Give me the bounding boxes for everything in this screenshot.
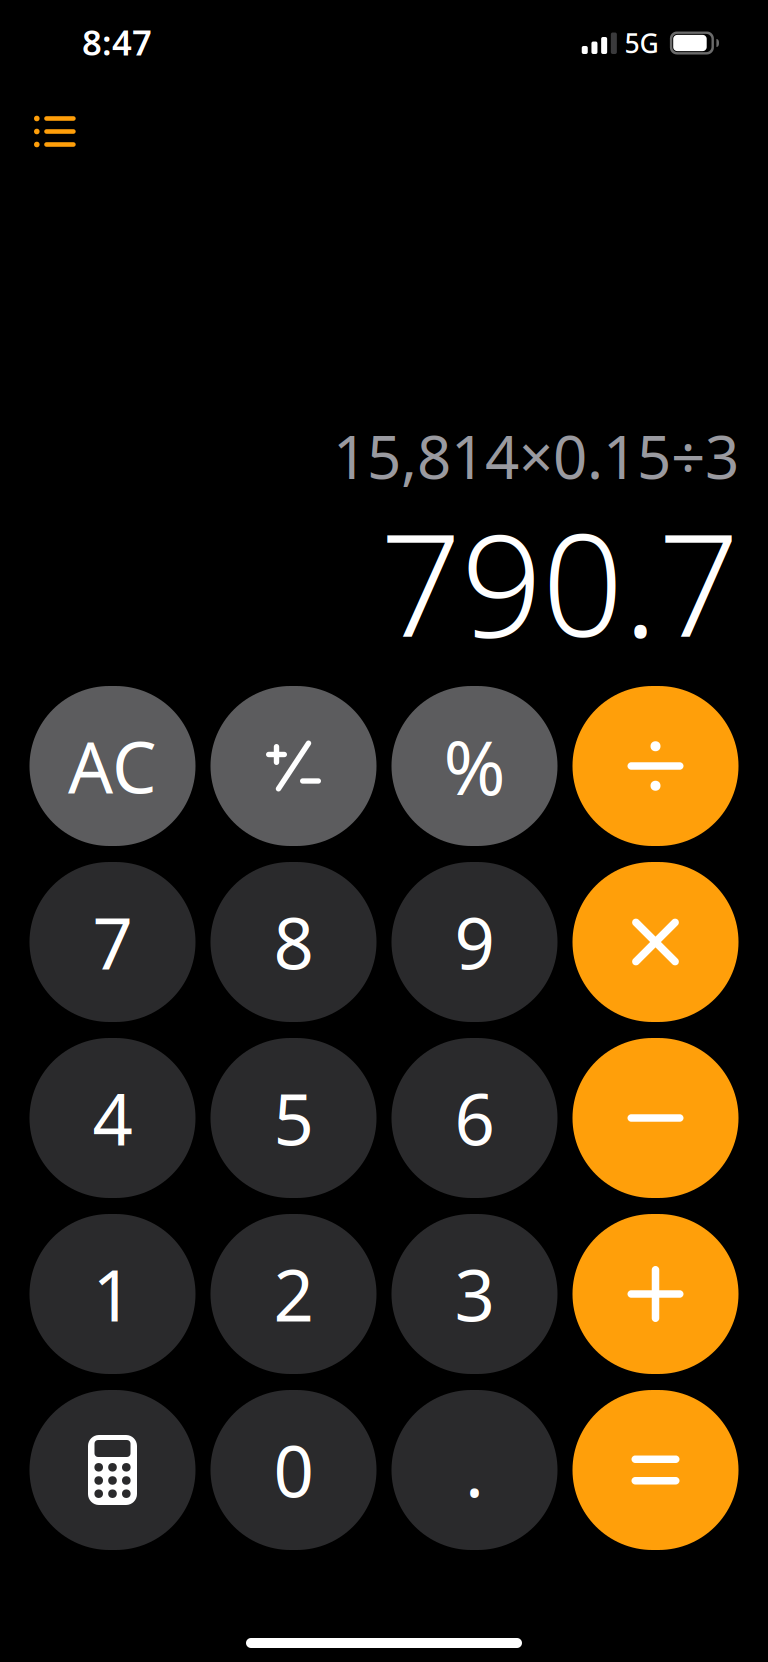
staticText: 1 xyxy=(92,1247,132,1341)
button[interactable]: 6 xyxy=(391,1038,557,1198)
button[interactable]: History xyxy=(22,104,88,159)
button[interactable]: Minus xyxy=(572,1038,738,1198)
button[interactable]: 1 xyxy=(29,1214,195,1374)
staticText: 7 xyxy=(92,895,132,989)
staticText: 8:47 xyxy=(82,19,152,65)
staticText: 0 xyxy=(273,1423,313,1517)
staticText: 2 xyxy=(273,1247,313,1341)
staticText: . xyxy=(465,1423,484,1517)
staticText: 6 xyxy=(454,1071,494,1165)
staticText: 15,814×0.15÷3 xyxy=(333,416,739,496)
button[interactable]: Multiply xyxy=(572,862,738,1022)
button[interactable]: Decimal point xyxy=(391,1390,557,1550)
staticText: % xyxy=(443,716,505,816)
button[interactable]: Plus Minus xyxy=(210,686,376,846)
staticText: 4 xyxy=(92,1071,132,1165)
button[interactable]: 9 xyxy=(391,862,557,1022)
button[interactable]: Divide xyxy=(572,686,738,846)
button[interactable]: 8 xyxy=(210,862,376,1022)
button[interactable]: Equals xyxy=(572,1390,738,1550)
button[interactable]: Plus xyxy=(572,1214,738,1374)
staticText: 5 xyxy=(273,1071,313,1165)
staticText: 790.7 xyxy=(380,486,739,676)
staticText: 5G xyxy=(624,25,658,61)
button[interactable]: 4 xyxy=(29,1038,195,1198)
button[interactable]: 3 xyxy=(391,1214,557,1374)
button[interactable]: 0 xyxy=(210,1390,376,1550)
button[interactable]: Calculator xyxy=(29,1390,195,1550)
staticText: AC xyxy=(68,719,157,813)
staticText: 8 xyxy=(273,895,313,989)
staticText: 9 xyxy=(454,895,494,989)
button[interactable]: 2 xyxy=(210,1214,376,1374)
button[interactable]: All Clear xyxy=(29,686,195,846)
button[interactable]: Percent xyxy=(391,686,557,846)
staticText: 3 xyxy=(454,1247,494,1341)
button[interactable]: 7 xyxy=(29,862,195,1022)
button[interactable]: 5 xyxy=(210,1038,376,1198)
